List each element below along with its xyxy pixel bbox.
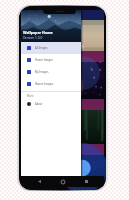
button[interactable]: Nature Images	[21, 78, 81, 90]
button[interactable]: Flower Images	[21, 54, 81, 66]
staticText: Nature Images	[35, 82, 54, 86]
button[interactable]: Wallpaper	[21, 20, 104, 62]
button[interactable]: Home	[57, 176, 69, 187]
button[interactable]: Recents	[80, 176, 92, 187]
button[interactable]: Wallpaper	[21, 62, 104, 110]
staticText: All Images	[35, 46, 48, 50]
button[interactable]: Wallpaper	[21, 155, 104, 176]
button[interactable]: All Images	[21, 42, 81, 54]
button[interactable]: About	[21, 98, 81, 110]
button[interactable]: Back	[33, 176, 45, 187]
button[interactable]: Wallpaper	[21, 110, 104, 155]
staticText: Flower Images	[35, 58, 53, 62]
staticText: My Images	[35, 70, 49, 74]
staticText: About	[35, 102, 43, 106]
button[interactable]: My Images	[21, 66, 81, 78]
staticText: Wallpaper Home	[23, 30, 53, 35]
staticText: Version 1.0.0	[23, 36, 43, 40]
staticText: More	[27, 94, 34, 98]
